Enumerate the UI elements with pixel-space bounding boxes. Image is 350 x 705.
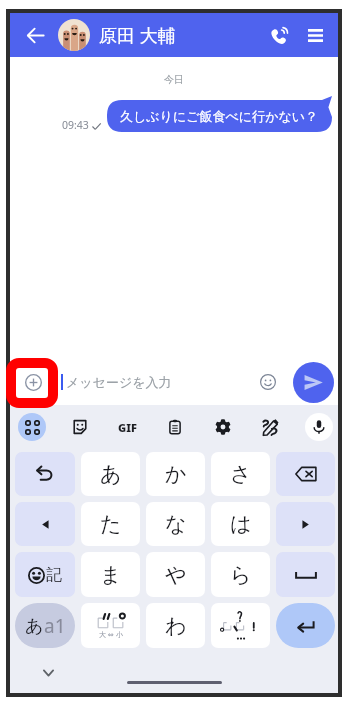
button[interactable]: Handwriting <box>256 413 284 441</box>
button[interactable]: Input mode <box>15 603 75 648</box>
button[interactable]: Emoji <box>251 365 285 399</box>
button[interactable]: や <box>146 552 205 597</box>
button[interactable]: か <box>146 452 205 496</box>
button[interactable]: Undo <box>15 452 75 496</box>
staticText: た <box>100 511 122 537</box>
staticText: ⇔ <box>108 631 114 639</box>
button[interactable]: Menu <box>298 18 332 52</box>
button[interactable]: Hide keyboard <box>34 659 62 687</box>
staticText: は <box>230 511 252 537</box>
button[interactable]: Add attachment <box>14 363 52 401</box>
staticText: ら <box>230 562 252 588</box>
staticText: 小 <box>116 630 123 639</box>
button[interactable]: Clipboard <box>161 413 189 441</box>
staticText: 久しぶりにご飯食べに行かない？ <box>120 108 319 124</box>
button[interactable]: Cursor left <box>15 502 75 546</box>
button[interactable]: Punctuation <box>211 603 270 648</box>
button[interactable]: わ <box>146 603 205 648</box>
button[interactable]: Send <box>293 362 334 403</box>
staticText: GIF <box>118 420 137 435</box>
button[interactable]: Call <box>262 18 296 52</box>
button[interactable]: あ <box>81 452 140 496</box>
staticText: あ <box>25 615 44 638</box>
staticText: 09:43 <box>62 118 89 132</box>
staticText: ま <box>100 562 122 588</box>
staticText: さ <box>230 461 252 487</box>
button[interactable]: な <box>146 502 205 546</box>
button[interactable]: ら <box>211 552 270 597</box>
button[interactable]: Dakuten <box>81 603 140 648</box>
button[interactable]: Apps <box>18 413 46 441</box>
staticText: や <box>165 562 187 588</box>
button[interactable]: Stickers <box>66 413 94 441</box>
staticText: メッセージを入力 <box>66 374 172 390</box>
button[interactable]: た <box>81 502 140 546</box>
staticText: あ <box>100 461 122 487</box>
button[interactable]: Settings <box>209 413 237 441</box>
button[interactable]: は <box>211 502 270 546</box>
button[interactable]: Voice input <box>305 413 333 441</box>
staticText: 大 <box>99 630 106 639</box>
staticText: 原田 大輔 <box>99 23 176 48</box>
button[interactable]: GIF <box>113 413 141 441</box>
staticText: か <box>165 461 187 487</box>
staticText: a1 <box>44 613 66 639</box>
button[interactable]: Cursor right <box>276 502 335 546</box>
staticText: な <box>165 511 187 537</box>
button[interactable]: Back <box>19 19 51 51</box>
button[interactable]: Space <box>276 552 335 597</box>
button[interactable]: さ <box>211 452 270 496</box>
staticText: わ <box>165 613 187 639</box>
staticText: 今日 <box>10 73 338 86</box>
button[interactable]: Enter <box>276 603 335 648</box>
button[interactable]: Backspace <box>276 452 335 496</box>
button[interactable]: ま <box>81 552 140 597</box>
staticText: 記 <box>46 565 62 585</box>
button[interactable]: Emoji and symbols <box>15 552 75 597</box>
